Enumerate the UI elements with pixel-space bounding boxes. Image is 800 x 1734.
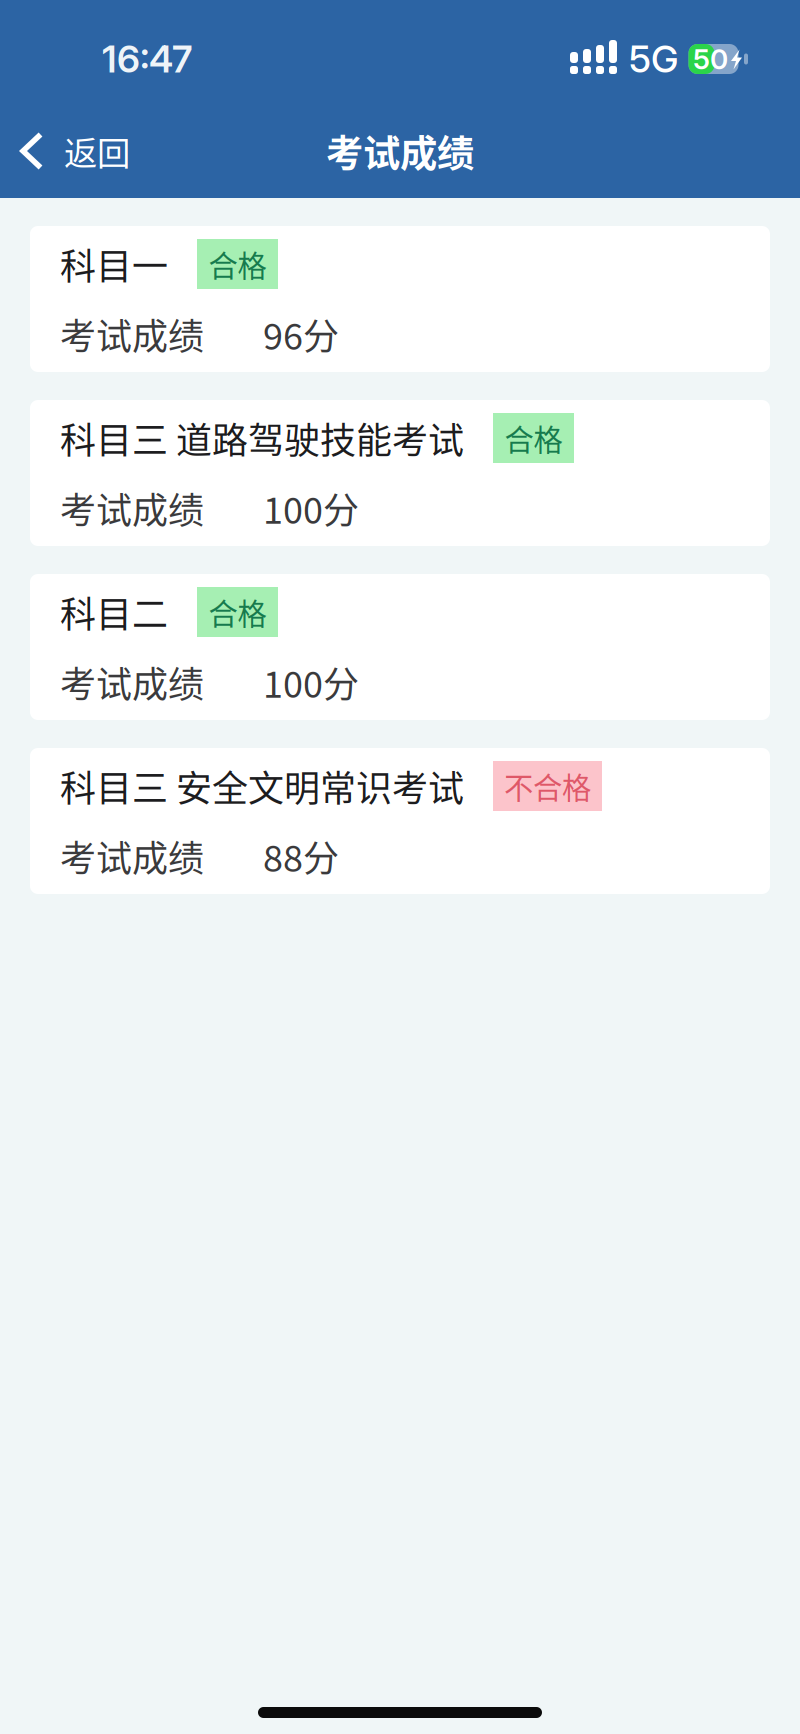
staticText: 50 bbox=[693, 42, 728, 76]
staticText: 考试成绩 bbox=[60, 656, 204, 708]
staticText: 返回 bbox=[64, 127, 130, 175]
staticText: 16:47 bbox=[102, 36, 192, 82]
staticText: 合格 bbox=[208, 243, 266, 285]
staticText: 5G bbox=[629, 36, 678, 82]
staticText: 合格 bbox=[208, 591, 266, 633]
button[interactable]: 科目一 bbox=[30, 226, 770, 372]
staticText: 科目三 道路驾驶技能考试 bbox=[60, 412, 464, 464]
button[interactable]: 返回 bbox=[0, 111, 146, 187]
staticText: 考试成绩 bbox=[60, 830, 204, 882]
staticText: 考试成绩 bbox=[326, 124, 474, 178]
staticText: 科目三 安全文明常识考试 bbox=[60, 760, 464, 812]
button[interactable]: 科目二 bbox=[30, 574, 770, 720]
button[interactable]: 科目三 道路驾驶技能考试 bbox=[30, 400, 770, 546]
staticText: 考试成绩 bbox=[60, 482, 204, 534]
staticText: 88分 bbox=[263, 830, 339, 882]
staticText: 合格 bbox=[504, 417, 562, 459]
button[interactable]: 科目三 安全文明常识考试 bbox=[30, 748, 770, 894]
staticText: 科目一 bbox=[60, 238, 168, 290]
staticText: 科目二 bbox=[60, 586, 168, 638]
staticText: 100分 bbox=[263, 656, 359, 708]
staticText: 96分 bbox=[263, 308, 339, 360]
staticText: 100分 bbox=[263, 482, 359, 534]
staticText: 考试成绩 bbox=[60, 308, 204, 360]
staticText: 不合格 bbox=[504, 765, 591, 807]
